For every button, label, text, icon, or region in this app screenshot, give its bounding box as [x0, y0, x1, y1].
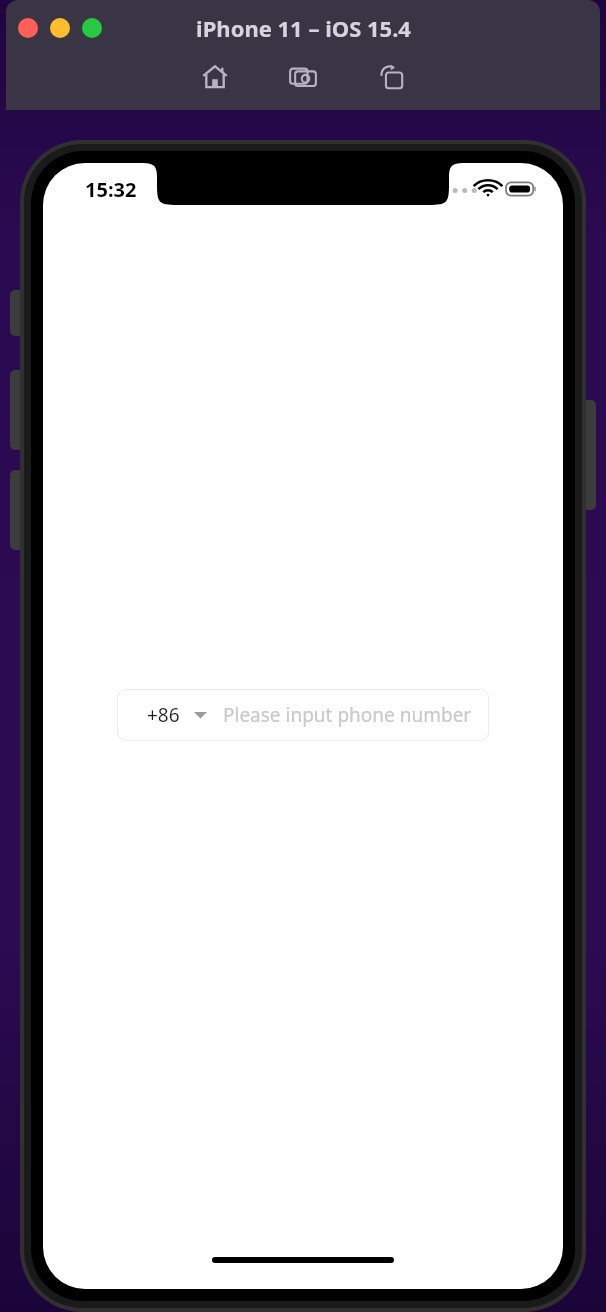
button[interactable]: Zoom — [82, 18, 102, 38]
button[interactable]: Screenshot — [284, 58, 322, 96]
button[interactable]: Home — [196, 58, 234, 96]
staticText: +86 — [147, 702, 180, 728]
button[interactable]: Select country code — [191, 706, 209, 724]
button[interactable]: Minimise — [50, 18, 70, 38]
staticText: Please input phone number — [223, 702, 472, 728]
staticText: iPhone 11 – iOS 15.4 — [196, 13, 411, 43]
staticText: 15:32 — [85, 176, 137, 203]
button[interactable]: +86 — [117, 689, 489, 741]
button[interactable]: Rotate — [372, 58, 410, 96]
button[interactable]: Close — [18, 18, 38, 38]
